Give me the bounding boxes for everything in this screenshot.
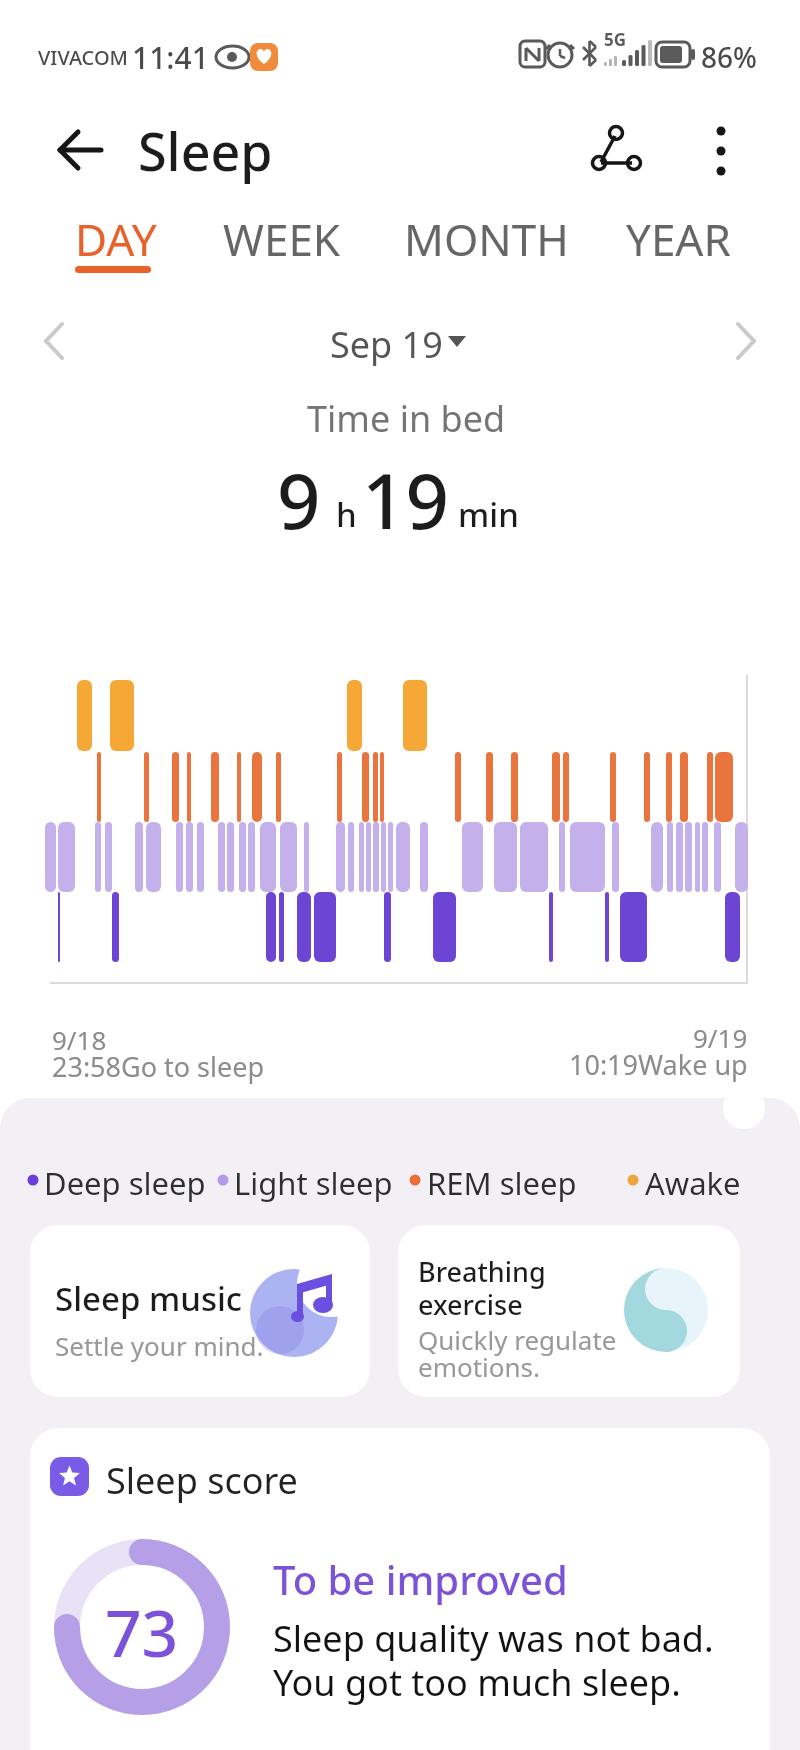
button[interactable] — [580, 118, 652, 182]
button[interactable] — [30, 1428, 770, 1750]
staticText: To be improved — [273, 1552, 568, 1606]
staticText: 73 — [105, 1589, 179, 1676]
button[interactable]: YEAR — [0, 0, 105, 60]
staticText: Sep 19 — [330, 320, 443, 366]
staticText: 86% — [701, 38, 757, 76]
button[interactable] — [48, 122, 112, 178]
staticText: min — [458, 492, 519, 537]
staticText: h — [336, 492, 357, 537]
staticText: 9/18 — [52, 1022, 107, 1057]
staticText: Time in bed — [307, 394, 506, 443]
staticText: 11:41 — [132, 37, 209, 78]
staticText: You got too much sleep. — [273, 1658, 681, 1707]
staticText: Breathing — [418, 1253, 546, 1290]
button[interactable] — [694, 118, 750, 182]
staticText: 5G — [604, 28, 627, 51]
button[interactable] — [398, 1225, 740, 1397]
staticText: Sleep score — [106, 1456, 298, 1505]
staticText: Settle your mind. — [55, 1328, 264, 1363]
button[interactable]: MONTH — [0, 0, 165, 60]
button[interactable]: DAY — [0, 0, 82, 60]
button[interactable]: Sleep — [0, 0, 135, 71]
staticText: Sleep quality was not bad. — [273, 1614, 714, 1663]
staticText: VIVACOM — [38, 44, 128, 71]
staticText: 9 — [277, 448, 321, 552]
button[interactable] — [30, 1225, 370, 1397]
staticText: 9/19 — [693, 1020, 748, 1055]
staticText: emotions. — [418, 1349, 541, 1384]
staticText: 10:19Wake up — [569, 1046, 748, 1083]
staticText: exercise — [418, 1286, 523, 1323]
staticText: Deep sleep — [44, 1162, 206, 1204]
staticText: Light sleep — [234, 1162, 393, 1204]
staticText: 23:58Go to sleep — [52, 1048, 265, 1085]
staticText: Awake — [645, 1162, 741, 1204]
staticText: Quickly regulate — [418, 1322, 617, 1357]
staticText: Sleep music — [55, 1276, 243, 1321]
button[interactable]: WEEK — [0, 0, 118, 60]
staticText: 19 — [362, 448, 449, 552]
staticText: REM sleep — [427, 1162, 577, 1204]
button[interactable]: Sep 19 — [300, 318, 500, 364]
